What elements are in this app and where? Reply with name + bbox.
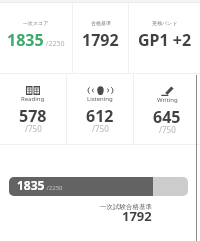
staticText: 1835 bbox=[7, 29, 44, 51]
staticText: 英検バンド bbox=[152, 20, 178, 26]
staticText: 1792 bbox=[82, 29, 119, 51]
staticText: 612 bbox=[86, 105, 114, 127]
other: Listening bbox=[92, 86, 109, 95]
staticText: 一次試験合格基準 bbox=[100, 203, 152, 211]
other: Writing bbox=[161, 86, 174, 96]
staticText: 合格基準 bbox=[91, 20, 111, 26]
staticText: Listening bbox=[87, 95, 113, 103]
staticText: Reading bbox=[21, 95, 45, 103]
staticText: /750 bbox=[25, 123, 42, 134]
staticText: 578 bbox=[19, 105, 47, 127]
staticText: 1835 bbox=[17, 177, 45, 193]
button[interactable]: Reading bbox=[0, 74, 66, 144]
staticText: 一次スコア bbox=[23, 20, 49, 26]
staticText: 645 bbox=[153, 106, 181, 128]
staticText: /2250 bbox=[44, 39, 65, 49]
button[interactable]: 合格基準 bbox=[73, 3, 128, 73]
staticText: 1792 bbox=[122, 207, 152, 225]
button[interactable]: Listening bbox=[67, 74, 133, 144]
staticText: /750 bbox=[159, 124, 176, 135]
button[interactable]: 一次スコア bbox=[0, 3, 72, 73]
button[interactable]: 1835 bbox=[9, 177, 188, 196]
staticText: /2250 bbox=[45, 184, 63, 192]
other: Reading bbox=[26, 86, 40, 95]
staticText: Writing bbox=[157, 96, 178, 104]
button[interactable]: 英検バンド bbox=[129, 3, 200, 73]
button[interactable]: Writing bbox=[134, 74, 200, 144]
staticText: GP1 +2 bbox=[138, 29, 192, 51]
staticText: /750 bbox=[92, 123, 109, 134]
